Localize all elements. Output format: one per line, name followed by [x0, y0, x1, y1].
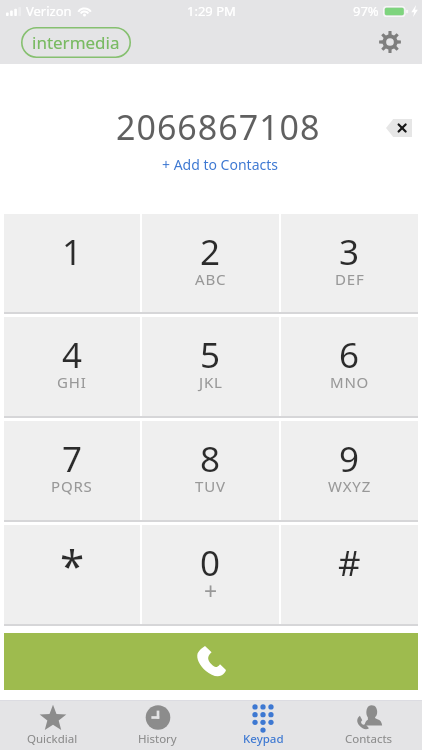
button[interactable]: 6	[281, 317, 418, 416]
staticText: 2	[200, 228, 221, 276]
button[interactable]: 1	[4, 214, 140, 312]
staticText: Contacts	[345, 731, 393, 747]
button[interactable]: Keypad	[210, 700, 316, 750]
button[interactable]: 8	[142, 421, 279, 520]
staticText: GHI	[57, 372, 87, 392]
staticText: 0	[200, 539, 221, 587]
staticText: 3	[339, 228, 360, 276]
button[interactable]: 2	[142, 214, 279, 312]
button[interactable]: Backspace	[381, 115, 416, 141]
staticText: Quickdial	[27, 731, 78, 747]
staticText: PQRS	[51, 476, 93, 496]
staticText: +	[204, 575, 218, 606]
button[interactable]: intermedia	[21, 27, 131, 58]
staticText: 97%	[353, 2, 379, 20]
staticText: intermedia	[32, 31, 120, 54]
button[interactable]: 0	[142, 525, 279, 624]
button[interactable]: Quickdial	[0, 700, 105, 750]
button[interactable]: 4	[4, 317, 140, 416]
button[interactable]: 3	[281, 214, 418, 312]
button[interactable]: Contacts	[316, 700, 422, 750]
button[interactable]: History	[105, 700, 210, 750]
staticText: ABC	[195, 269, 227, 289]
staticText: 1:29 PM	[187, 2, 236, 20]
button[interactable]: 9	[281, 421, 418, 520]
button[interactable]: Settings	[379, 31, 401, 53]
button[interactable]: + Add to Contacts	[156, 153, 284, 176]
staticText: WXYZ	[328, 476, 372, 496]
staticText: + Add to Contacts	[162, 155, 278, 174]
staticText: *	[60, 535, 85, 595]
staticText: 5	[200, 331, 221, 379]
button[interactable]: 7	[4, 421, 140, 520]
staticText: 1	[62, 228, 83, 276]
staticText: History	[138, 731, 177, 747]
staticText: Verizon	[26, 2, 72, 20]
staticText: #	[338, 539, 361, 587]
button[interactable]: 5	[142, 317, 279, 416]
staticText: 4	[62, 331, 83, 379]
staticText: 6	[339, 331, 360, 379]
button[interactable]: #	[281, 525, 418, 624]
staticText: JKL	[199, 372, 223, 392]
staticText: 2066867108	[116, 104, 321, 150]
staticText: 7	[62, 435, 83, 483]
staticText: 8	[200, 435, 221, 483]
button[interactable]: *	[4, 525, 140, 624]
staticText: DEF	[335, 269, 365, 289]
staticText: 9	[339, 435, 360, 483]
staticText: MNO	[330, 372, 370, 392]
staticText: TUV	[195, 476, 226, 496]
button[interactable]: Call	[4, 633, 418, 690]
staticText: Keypad	[243, 731, 284, 747]
